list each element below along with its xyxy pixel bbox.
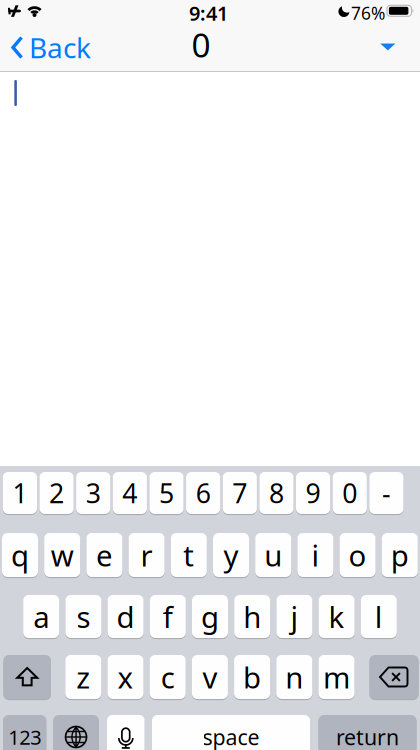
staticText: 8 — [269, 475, 284, 511]
button[interactable]: return — [318, 715, 416, 750]
staticText: u — [264, 535, 282, 574]
button[interactable]: n — [276, 655, 312, 699]
staticText: x — [117, 657, 133, 696]
button[interactable]: c — [150, 655, 186, 699]
staticText: e — [96, 535, 113, 574]
button[interactable]: Back — [11, 26, 91, 69]
button[interactable]: f — [150, 595, 186, 638]
button[interactable]: i — [297, 533, 333, 577]
button[interactable]: m — [318, 655, 354, 699]
button[interactable]: o — [340, 533, 376, 577]
staticText: w — [51, 535, 74, 574]
staticText: z — [76, 657, 90, 696]
staticText: l — [375, 597, 383, 636]
button[interactable]: k — [319, 595, 355, 638]
button[interactable]: 4 — [113, 472, 147, 514]
button[interactable]: 6 — [186, 472, 220, 514]
button[interactable]: - — [369, 472, 403, 514]
staticText: o — [349, 535, 367, 574]
staticText: i — [311, 535, 319, 574]
button[interactable]: r — [129, 533, 165, 577]
button[interactable]: space — [152, 715, 310, 750]
staticText: space — [202, 723, 259, 750]
button[interactable]: 0 — [333, 472, 367, 514]
button[interactable]: 7 — [223, 472, 257, 514]
button[interactable]: g — [192, 595, 228, 638]
button[interactable]: Next keyboard — [53, 715, 99, 750]
staticText: j — [290, 597, 298, 636]
staticText: 3 — [86, 475, 101, 511]
staticText: k — [329, 597, 345, 636]
button[interactable]: w — [44, 533, 80, 577]
staticText: 1 — [12, 475, 27, 511]
button[interactable]: 8 — [259, 472, 294, 514]
staticText: s — [76, 597, 90, 636]
staticText: r — [141, 535, 153, 574]
button[interactable]: 2 — [39, 472, 74, 514]
staticText: 6 — [196, 475, 211, 511]
staticText: 5 — [159, 475, 174, 511]
staticText: g — [201, 597, 219, 636]
button[interactable]: Delete — [369, 655, 418, 699]
button[interactable]: j — [276, 595, 312, 638]
staticText: h — [243, 597, 261, 636]
staticText: y — [223, 535, 238, 574]
button[interactable]: 9 — [296, 472, 330, 514]
staticText: 7 — [232, 475, 247, 511]
button[interactable]: h — [234, 595, 270, 638]
button[interactable]: s — [65, 595, 101, 638]
staticText: a — [33, 597, 49, 636]
button[interactable]: a — [23, 595, 59, 638]
button[interactable]: 123 — [3, 715, 46, 750]
button[interactable]: Dictation — [107, 715, 145, 750]
button[interactable]: e — [86, 533, 122, 577]
staticText: 9:41 — [189, 0, 228, 26]
button[interactable]: Show documents — [380, 43, 396, 51]
button[interactable]: d — [108, 595, 144, 638]
button[interactable]: Shift — [3, 655, 51, 699]
button[interactable]: p — [382, 533, 418, 577]
staticText: q — [11, 535, 29, 574]
button[interactable]: l — [361, 595, 397, 638]
button[interactable]: 1 — [3, 472, 37, 514]
button[interactable]: 5 — [149, 472, 184, 514]
staticText: b — [243, 657, 261, 696]
button[interactable]: z — [65, 655, 101, 699]
staticText: 76% — [351, 1, 385, 24]
staticText: p — [391, 535, 409, 574]
staticText: 123 — [8, 724, 41, 750]
staticText: - — [382, 475, 391, 511]
button[interactable]: q — [2, 533, 38, 577]
button[interactable]: x — [107, 655, 143, 699]
staticText: n — [285, 657, 303, 696]
staticText: t — [183, 535, 194, 574]
staticText: c — [161, 657, 175, 696]
button[interactable]: t — [171, 533, 207, 577]
staticText: 0 — [191, 22, 210, 67]
staticText: Back — [29, 29, 91, 66]
button[interactable]: b — [234, 655, 270, 699]
staticText: 9 — [306, 475, 321, 511]
button[interactable]: y — [213, 533, 249, 577]
button[interactable]: u — [255, 533, 291, 577]
staticText: 4 — [122, 475, 137, 511]
staticText: f — [163, 597, 173, 636]
button[interactable]: 3 — [76, 472, 110, 514]
staticText: d — [117, 597, 135, 636]
staticText: m — [323, 657, 350, 696]
staticText: 2 — [49, 475, 64, 511]
staticText: 0 — [342, 475, 357, 511]
button[interactable]: v — [192, 655, 228, 699]
staticText: return — [336, 723, 399, 750]
staticText: v — [202, 657, 217, 696]
